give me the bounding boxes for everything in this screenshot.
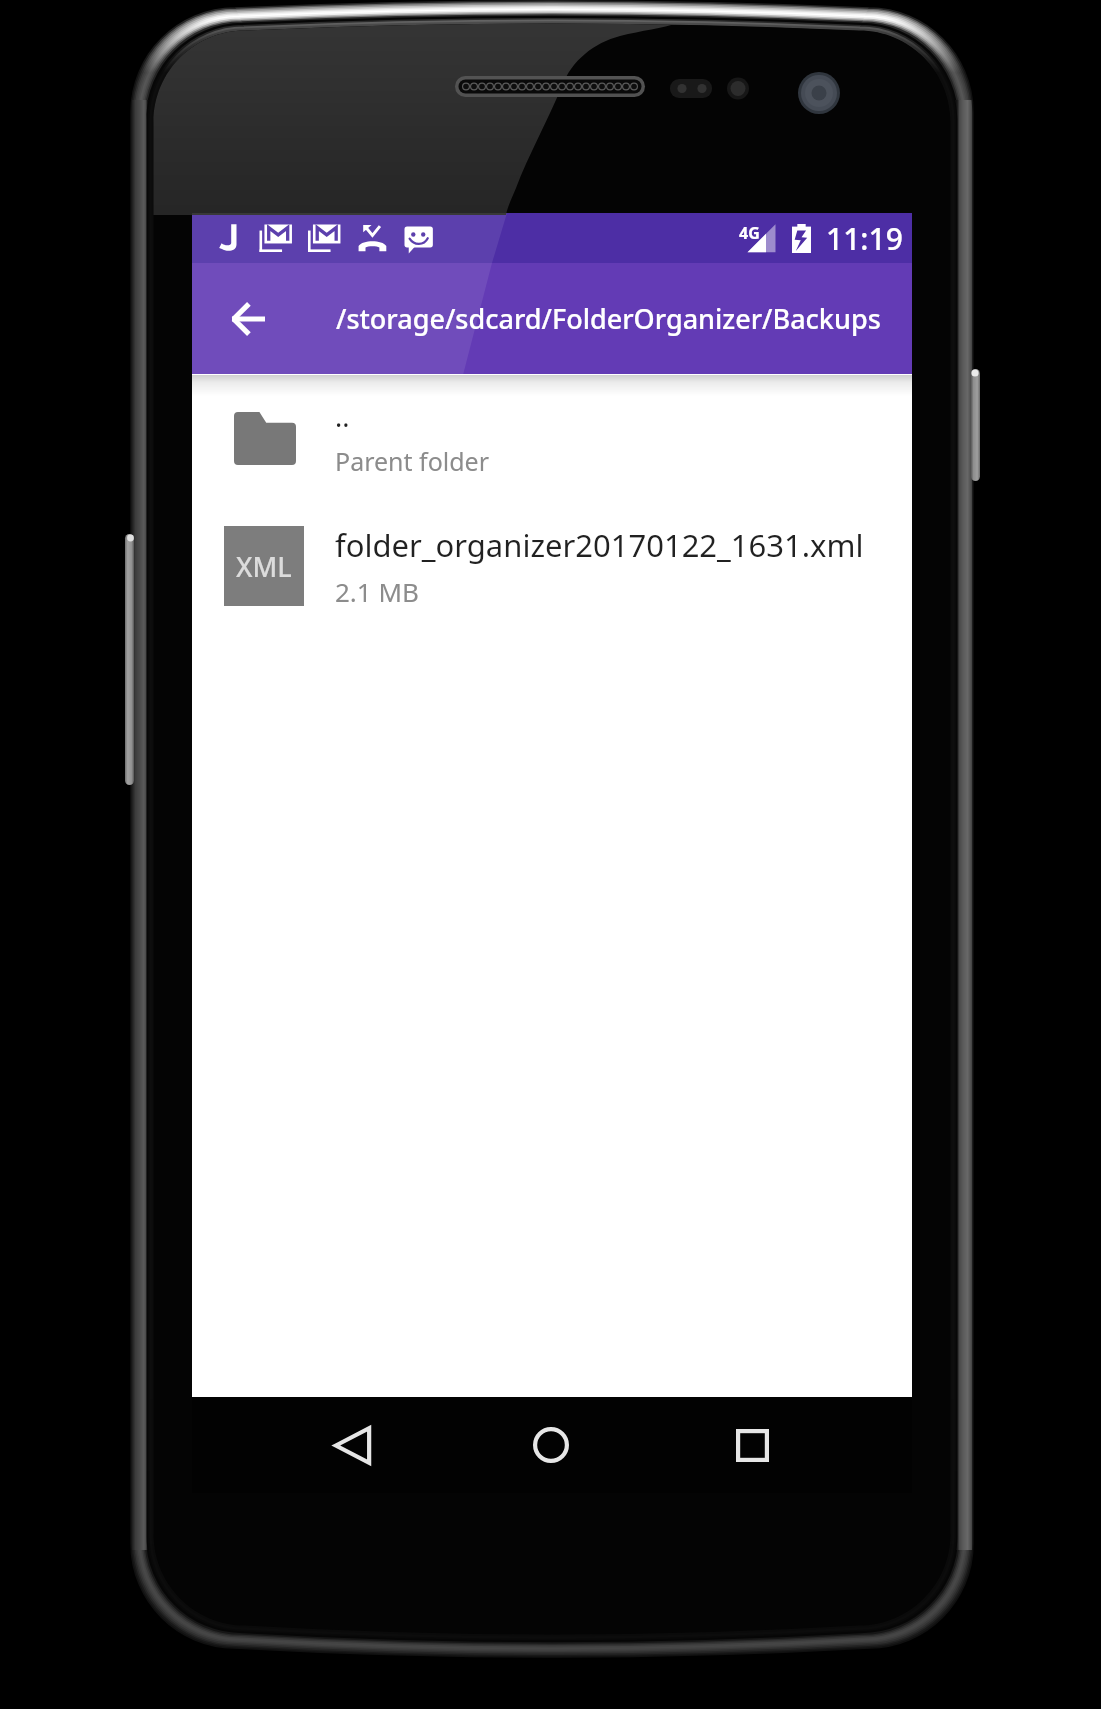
- button[interactable]: Navigate up: [207, 278, 288, 359]
- staticText: ..: [335, 398, 350, 435]
- button[interactable]: Back: [292, 1397, 412, 1493]
- staticText: /storage/sdcard/FolderOrganizer/Backups: [336, 300, 881, 337]
- staticText: 11:19: [826, 218, 903, 259]
- staticText: 2.1 MB: [335, 574, 419, 609]
- staticText: Parent folder: [335, 444, 490, 478]
- button[interactable]: ..: [192, 396, 912, 514]
- staticText: folder_organizer20170122_1631.xml: [335, 524, 864, 566]
- button[interactable]: Home: [491, 1397, 611, 1493]
- button[interactable]: XML: [192, 514, 912, 638]
- button[interactable]: Recent apps: [692, 1397, 812, 1493]
- staticText: 4G: [739, 222, 760, 244]
- staticText: XML: [236, 548, 292, 585]
